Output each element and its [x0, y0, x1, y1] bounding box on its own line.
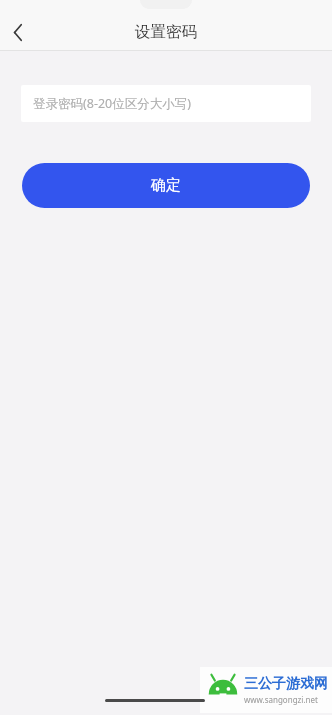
staticText: 三公子游戏网	[244, 675, 328, 693]
button[interactable]: 确定	[22, 163, 310, 208]
button[interactable]: Back	[0, 14, 36, 50]
button[interactable]: 登录密码(8-20位区分大小写)	[21, 85, 311, 122]
staticText: 登录密码(8-20位区分大小写)	[33, 95, 191, 112]
staticText: www.sangongzi.net	[244, 694, 318, 705]
staticText: 确定	[151, 176, 181, 195]
staticText: 设置密码	[135, 22, 197, 42]
